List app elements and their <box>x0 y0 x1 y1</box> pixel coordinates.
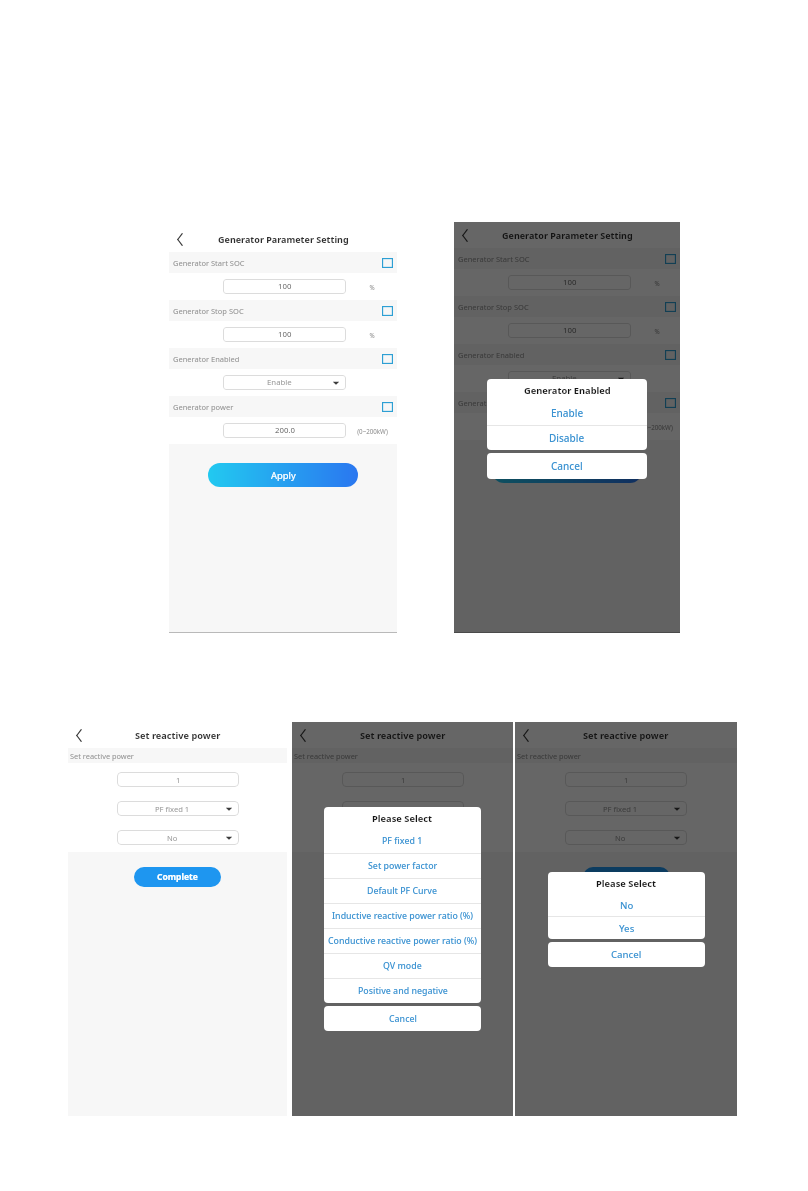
staticText: % <box>369 331 375 339</box>
other: Back <box>518 727 535 744</box>
button[interactable]: Cancel <box>487 453 647 479</box>
other: Back <box>295 727 312 744</box>
staticText: Generator Enabled <box>458 350 665 360</box>
button[interactable]: No <box>117 830 239 845</box>
button[interactable]: Conductive reactive power ratio (%) <box>324 929 481 953</box>
button[interactable]: Generator Start SOC <box>458 248 676 269</box>
button[interactable]: Enable <box>487 401 647 425</box>
staticText: Complete <box>157 871 198 883</box>
button[interactable]: Generator Stop SOC <box>173 300 393 321</box>
staticText: 1 <box>176 775 181 785</box>
button[interactable]: Apply <box>208 463 358 487</box>
button[interactable]: 1 <box>117 772 239 787</box>
staticText: % <box>654 279 660 287</box>
button[interactable]: Set power factor <box>324 854 481 878</box>
button[interactable]: 1 <box>342 772 464 787</box>
other: Back <box>457 227 474 244</box>
staticText: No <box>620 899 634 912</box>
button[interactable]: PF fixed 1 <box>117 801 239 816</box>
staticText: Please Select <box>372 812 433 825</box>
staticText: 100 <box>563 325 577 336</box>
staticText: (0~200kW) <box>357 427 388 435</box>
button[interactable]: Complete <box>359 867 446 887</box>
button[interactable]: Complete <box>583 867 670 887</box>
button[interactable]: Positive and negative <box>324 979 481 1003</box>
button[interactable]: Default PF Curve <box>324 879 481 903</box>
button[interactable]: No <box>342 830 464 845</box>
button[interactable]: No <box>565 830 687 845</box>
button[interactable]: PF fixed 1 <box>565 801 687 816</box>
button[interactable]: Generator Enabled <box>458 344 676 365</box>
staticText: Set reactive power <box>360 729 446 742</box>
staticText: Cancel <box>611 948 642 961</box>
button[interactable]: Apply <box>492 459 642 483</box>
staticText: Generator Start SOC <box>458 254 665 264</box>
button[interactable]: Cancel <box>548 942 705 967</box>
staticText: Complete <box>606 871 647 883</box>
button[interactable]: 200.0 <box>223 423 346 438</box>
staticText: Set reactive power <box>294 751 358 761</box>
button[interactable]: 1 <box>565 772 687 787</box>
button[interactable]: Complete <box>134 867 221 887</box>
button[interactable]: 200.0 <box>508 419 631 434</box>
button[interactable]: Back <box>171 230 189 248</box>
button[interactable]: Enable <box>508 371 631 386</box>
staticText: Apply <box>555 465 580 478</box>
staticText: Please Select <box>596 877 657 890</box>
button[interactable]: 100 <box>223 279 346 294</box>
button[interactable]: 100 <box>508 323 631 338</box>
button[interactable]: Back <box>456 226 474 244</box>
staticText: Generator Enabled <box>524 384 611 397</box>
staticText: Enable <box>551 406 584 420</box>
staticText: Set reactive power <box>583 729 669 742</box>
staticText: 200.0 <box>275 425 295 436</box>
staticText: Generator Parameter Setting <box>502 229 633 241</box>
staticText: Conductive reactive power ratio (%) <box>328 935 477 947</box>
staticText: PF fixed 1 <box>603 804 638 814</box>
button[interactable]: 100 <box>223 327 346 342</box>
staticText: Generator power <box>458 398 665 408</box>
button[interactable]: PF fixed 1 <box>342 801 464 816</box>
button[interactable]: PF fixed 1 <box>324 829 481 853</box>
staticText: Cancel <box>551 459 583 473</box>
staticText: Generator Start SOC <box>173 258 382 268</box>
button[interactable]: Generator Start SOC <box>173 252 393 273</box>
staticText: QV mode <box>383 960 422 972</box>
staticText: 100 <box>563 277 577 288</box>
staticText: 100 <box>278 329 292 340</box>
staticText: Generator Enabled <box>173 354 382 364</box>
button[interactable]: Inductive reactive power ratio (%) <box>324 904 481 928</box>
button[interactable]: Back <box>70 726 88 744</box>
staticText: No <box>167 833 178 843</box>
button[interactable]: Yes <box>548 917 705 939</box>
other: Toggle <box>665 302 676 312</box>
staticText: Default PF Curve <box>367 885 438 897</box>
other: Toggle <box>382 402 393 412</box>
button[interactable]: 100 <box>508 275 631 290</box>
button[interactable]: Back <box>294 726 312 744</box>
button[interactable]: Generator power <box>173 396 393 417</box>
button[interactable]: QV mode <box>324 954 481 978</box>
staticText: % <box>369 283 375 291</box>
button[interactable]: Disable <box>487 426 647 450</box>
button[interactable]: Generator power <box>458 392 676 413</box>
button[interactable]: Cancel <box>324 1006 481 1031</box>
other: Back <box>172 231 189 248</box>
other: Toggle <box>382 354 393 364</box>
staticText: 1 <box>401 775 406 785</box>
staticText: Generator Parameter Setting <box>218 233 349 245</box>
staticText: PF fixed 1 <box>380 804 415 814</box>
staticText: Inductive reactive power ratio (%) <box>332 910 474 922</box>
button[interactable]: Enable <box>223 375 346 390</box>
button[interactable]: Generator Stop SOC <box>458 296 676 317</box>
staticText: PF fixed 1 <box>155 804 190 814</box>
staticText: Generator Stop SOC <box>173 306 382 316</box>
staticText: No <box>392 833 403 843</box>
staticText: Positive and negative <box>358 985 448 997</box>
button[interactable]: Generator Enabled <box>173 348 393 369</box>
staticText: Enable <box>267 377 292 388</box>
other: Toggle <box>382 258 393 268</box>
button[interactable]: No <box>548 894 705 916</box>
staticText: Enable <box>552 373 577 384</box>
button[interactable]: Back <box>517 726 535 744</box>
